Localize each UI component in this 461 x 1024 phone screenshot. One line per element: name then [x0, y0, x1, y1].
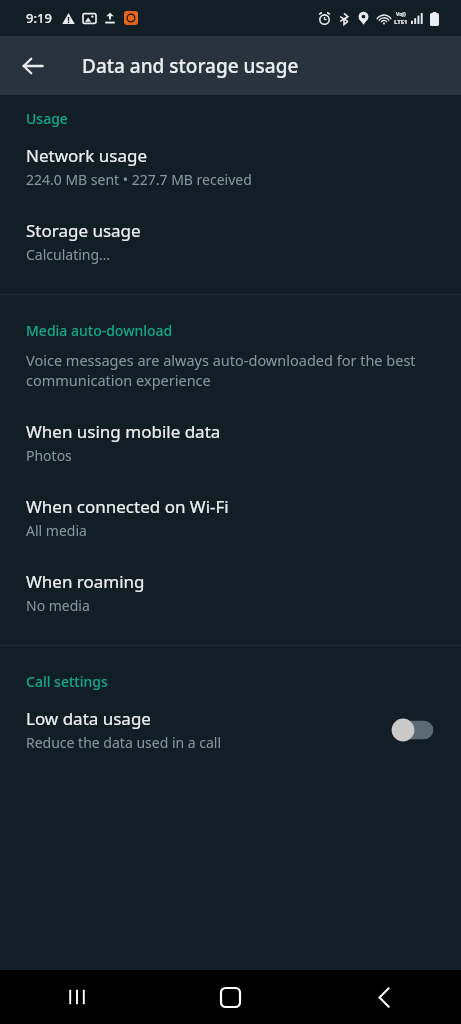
button[interactable]: Network usage	[0, 142, 461, 191]
staticText: Network usage	[26, 144, 148, 167]
button[interactable]: When roaming	[0, 568, 461, 617]
staticText: Storage usage	[26, 219, 141, 242]
button[interactable]: Back	[11, 44, 55, 88]
button[interactable]: Back	[307, 970, 461, 1024]
staticText: Photos	[26, 446, 72, 465]
staticText: Data and storage usage	[82, 53, 299, 79]
button[interactable]: When using mobile data	[0, 418, 461, 467]
staticText: When connected on Wi-Fi	[26, 495, 229, 518]
staticText: No media	[26, 596, 90, 615]
staticText: Call settings	[26, 672, 461, 691]
button[interactable]: Recent apps	[0, 970, 153, 1024]
staticText: Media auto-download	[26, 321, 461, 340]
staticText: Calculating…	[26, 245, 111, 264]
staticText: Reduce the data used in a call	[26, 733, 222, 752]
button[interactable]: Low data usage	[0, 705, 461, 754]
staticText: All media	[26, 521, 87, 540]
button[interactable]: Storage usage	[0, 217, 461, 266]
staticText: 224.0 MB sent • 227.7 MB received	[26, 170, 252, 189]
staticText: Usage	[26, 109, 461, 128]
button[interactable]: Home	[153, 970, 307, 1024]
staticText: When using mobile data	[26, 420, 221, 443]
staticText: When roaming	[26, 570, 145, 593]
button[interactable]: When connected on Wi-Fi	[0, 493, 461, 542]
staticText: Voice messages are always auto-downloade…	[26, 350, 421, 391]
staticText: VoJ)	[396, 11, 406, 18]
staticText: Low data usage	[26, 707, 151, 730]
staticText: LTE1	[394, 18, 408, 26]
staticText: 9:19	[26, 9, 52, 27]
